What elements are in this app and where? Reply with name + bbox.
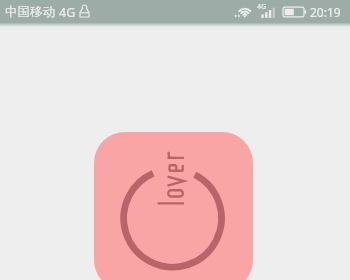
- button[interactable]: lover: [94, 132, 253, 280]
- staticText: 20:19: [310, 4, 341, 20]
- staticText: 4G: [257, 2, 267, 12]
- staticText: 4G: [59, 4, 76, 21]
- staticText: 中国移动: [5, 4, 55, 20]
